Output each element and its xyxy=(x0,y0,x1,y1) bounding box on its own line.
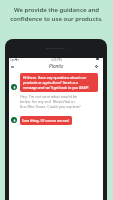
staticText: Plantix xyxy=(49,63,64,69)
staticText: Sure thing. Of course we can! xyxy=(22,118,70,123)
button[interactable]: Plantix xyxy=(9,63,103,69)
button[interactable]: Open navigation menu xyxy=(9,63,16,70)
staticText: Hi there. Have any questions about our p… xyxy=(23,75,92,90)
button[interactable]: Account xyxy=(93,63,100,70)
staticText: 3:45 PM xyxy=(51,58,62,62)
staticText: Carrier xyxy=(10,58,20,62)
staticText: We provide the guidance and confidence t… xyxy=(6,6,107,23)
staticText: Hey. I'm not sure what would be better f… xyxy=(20,94,82,109)
